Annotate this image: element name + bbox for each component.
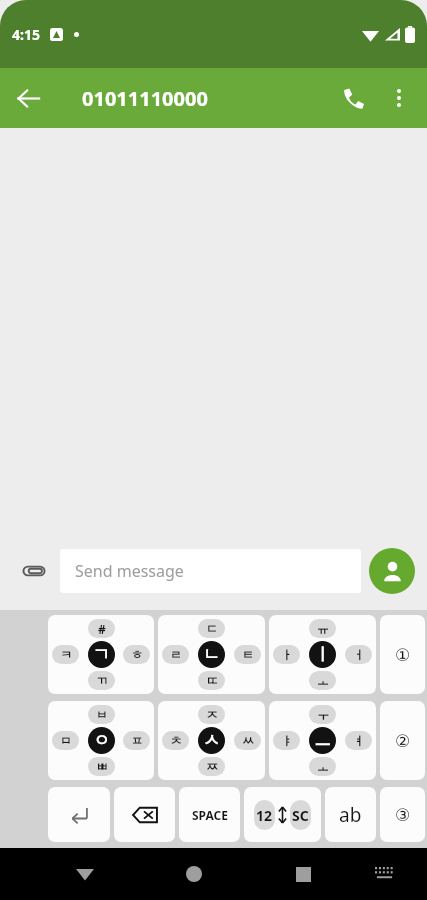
button[interactable]: ㄱ xyxy=(48,615,154,694)
staticText: ㅎ xyxy=(131,647,143,662)
button[interactable]: Send message xyxy=(60,549,361,593)
staticText: ㄹ xyxy=(170,647,182,662)
staticText: ab xyxy=(339,802,362,828)
staticText: ㅇ xyxy=(93,730,110,751)
button[interactable]: ② xyxy=(380,701,425,780)
button[interactable]: ㅡ xyxy=(269,701,376,780)
button[interactable]: Switch keyboard xyxy=(360,850,408,898)
staticText: ㅃ xyxy=(96,759,108,774)
button[interactable]: Recents xyxy=(277,848,329,900)
staticText: ① xyxy=(395,645,411,665)
staticText: 01011110000 xyxy=(82,85,208,112)
button[interactable]: ③ xyxy=(380,787,425,842)
staticText: SC xyxy=(292,806,309,825)
staticText: ㄲ xyxy=(96,673,108,688)
staticText: ㅆ xyxy=(242,733,254,748)
button[interactable]: Attach xyxy=(12,549,56,593)
staticText: 12 xyxy=(256,806,273,825)
button[interactable]: Back xyxy=(59,848,111,900)
staticText: ㄷ xyxy=(206,621,218,636)
staticText: ② xyxy=(395,731,411,751)
button[interactable]: Enter xyxy=(48,787,110,842)
staticText: ㅁ xyxy=(60,733,72,748)
staticText: Send message xyxy=(75,560,184,582)
staticText: ㅜ xyxy=(317,707,329,722)
staticText: ㅣ xyxy=(314,644,331,665)
staticText: ㄸ xyxy=(206,673,218,688)
button[interactable]: Backspace xyxy=(114,787,175,842)
button[interactable]: Call xyxy=(329,74,377,122)
staticText: ㅂ xyxy=(96,707,108,722)
staticText: ㄱ xyxy=(93,644,110,665)
button[interactable]: Back xyxy=(0,70,56,126)
staticText: ㅍ xyxy=(131,733,143,748)
staticText: ㅉ xyxy=(206,759,218,774)
staticText: ㄴ xyxy=(203,644,220,665)
button[interactable]: ab xyxy=(325,787,376,842)
staticText: ㅊ xyxy=(170,733,182,748)
staticText: ㅋ xyxy=(60,647,72,662)
button[interactable]: SPACE xyxy=(179,787,240,842)
staticText: SPACE xyxy=(192,807,228,823)
staticText: ㅓ xyxy=(353,647,365,662)
staticText: ㅗ xyxy=(317,759,329,774)
button[interactable]: ① xyxy=(380,615,425,694)
staticText: ㅈ xyxy=(206,707,218,722)
button[interactable]: Home xyxy=(168,848,220,900)
staticText: ㅌ xyxy=(242,647,254,662)
button[interactable]: ㅇ xyxy=(48,701,154,780)
staticText: ㅏ xyxy=(281,647,293,662)
button[interactable]: Number and symbol mode xyxy=(244,787,321,842)
button[interactable]: Send xyxy=(369,548,415,594)
staticText: ㅅ xyxy=(203,730,220,751)
button[interactable]: More options xyxy=(377,76,421,120)
staticText: ㅗ xyxy=(317,673,329,688)
staticText: ㅑ xyxy=(281,733,293,748)
staticText: ㅠ xyxy=(317,621,329,636)
button[interactable]: ㅣ xyxy=(269,615,376,694)
staticText: ㅡ xyxy=(314,730,331,751)
staticText: 4:15 xyxy=(12,25,40,44)
staticText: # xyxy=(98,621,106,637)
staticText: ③ xyxy=(395,805,411,825)
button[interactable]: ㄴ xyxy=(158,615,265,694)
staticText: ㅕ xyxy=(353,733,365,748)
button[interactable]: ㅅ xyxy=(158,701,265,780)
